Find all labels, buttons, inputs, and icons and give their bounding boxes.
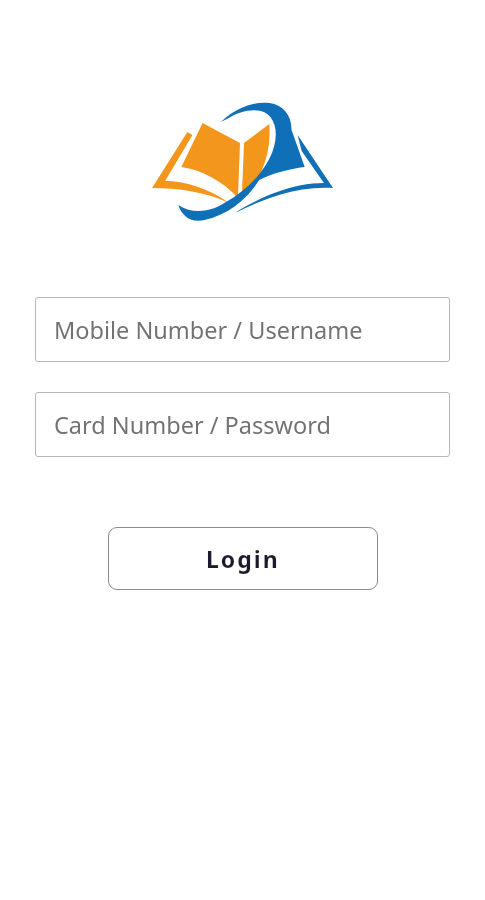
staticText: Card Number / Password xyxy=(54,409,331,441)
button[interactable]: Card Number / Password xyxy=(35,392,450,457)
staticText: Mobile Number / Username xyxy=(54,314,363,346)
button[interactable]: Login xyxy=(108,527,378,590)
other: App logo: open book xyxy=(150,102,332,222)
staticText: Login xyxy=(206,543,280,574)
button[interactable]: Mobile Number / Username xyxy=(35,297,450,362)
